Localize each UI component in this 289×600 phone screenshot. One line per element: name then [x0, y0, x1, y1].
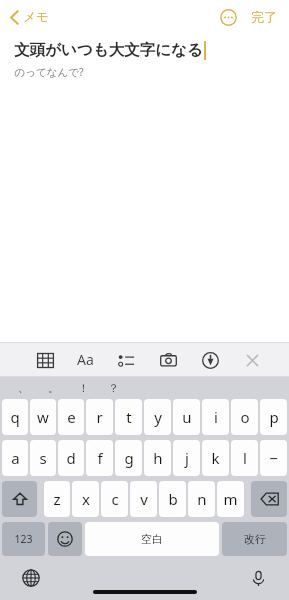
button[interactable]: y	[144, 399, 171, 435]
button[interactable]: ！	[68, 381, 98, 395]
button[interactable]: o	[231, 399, 258, 435]
button[interactable]: m	[217, 481, 244, 517]
staticText: s	[39, 448, 47, 468]
button[interactable]: s	[30, 440, 56, 476]
button[interactable]: 。	[38, 381, 68, 395]
staticText: y	[154, 407, 162, 427]
button[interactable]: Checklist	[111, 345, 141, 375]
button[interactable]: v	[130, 481, 157, 517]
button[interactable]: 完了	[247, 5, 281, 29]
staticText: b	[168, 489, 178, 509]
staticText: Aa	[77, 350, 94, 369]
staticText: g	[124, 448, 134, 468]
staticText: メモ	[23, 9, 49, 25]
staticText: d	[66, 448, 76, 468]
staticText: 123	[14, 532, 33, 546]
button[interactable]: b	[159, 481, 186, 517]
button[interactable]: Camera	[153, 345, 183, 375]
button[interactable]: p	[260, 399, 287, 435]
button[interactable]: メモ	[6, 5, 53, 29]
staticText: c	[111, 489, 119, 509]
button[interactable]: Close keyboard	[237, 345, 267, 375]
button[interactable]: Insert table	[30, 345, 60, 375]
button[interactable]: Backspace	[251, 481, 287, 517]
staticText: i	[214, 407, 218, 427]
button[interactable]: 、	[8, 381, 38, 395]
button[interactable]: Markup	[195, 345, 225, 375]
staticText: ！	[78, 381, 89, 395]
button[interactable]: q	[2, 399, 28, 435]
staticText: 改行	[244, 532, 266, 546]
button[interactable]: Shift	[2, 481, 37, 517]
staticText: l	[243, 448, 247, 468]
staticText: x	[82, 489, 90, 509]
staticText: j	[185, 448, 189, 468]
button[interactable]: w	[30, 399, 56, 435]
button[interactable]: t	[115, 399, 142, 435]
button[interactable]: f	[86, 440, 113, 476]
button[interactable]: x	[72, 481, 99, 517]
staticText: r	[96, 407, 103, 427]
staticText: q	[10, 407, 20, 427]
staticText: w	[37, 407, 49, 427]
button[interactable]: Aa	[71, 344, 100, 375]
staticText: 。	[48, 381, 59, 395]
button[interactable]: u	[173, 399, 200, 435]
staticText: p	[269, 407, 279, 427]
button[interactable]: r	[86, 399, 113, 435]
staticText: 、	[18, 381, 29, 395]
button[interactable]: n	[188, 481, 215, 517]
button[interactable]: i	[202, 399, 229, 435]
button[interactable]: z	[44, 481, 70, 517]
button[interactable]: a	[2, 440, 28, 476]
staticText: o	[240, 407, 250, 427]
staticText: ？	[108, 381, 119, 395]
button[interactable]: Dictation	[245, 565, 271, 591]
button[interactable]: l	[231, 440, 258, 476]
staticText: −	[269, 448, 278, 468]
button[interactable]: 改行	[222, 522, 287, 556]
staticText: t	[126, 407, 132, 427]
staticText: u	[182, 407, 192, 427]
button[interactable]: ？	[98, 381, 128, 395]
staticText: a	[11, 448, 20, 468]
button[interactable]: c	[101, 481, 128, 517]
button[interactable]: Emoji	[48, 522, 82, 556]
button[interactable]: j	[173, 440, 200, 476]
staticText: v	[140, 489, 148, 509]
button[interactable]: −	[260, 440, 287, 476]
staticText: h	[153, 448, 163, 468]
staticText: 完了	[251, 9, 277, 25]
staticText: 文頭がいつも大文字になる	[14, 40, 203, 60]
staticText: f	[97, 448, 103, 468]
staticText: 空白	[141, 532, 163, 546]
staticText: m	[223, 489, 238, 509]
button[interactable]: More options	[215, 4, 241, 30]
button[interactable]: g	[115, 440, 142, 476]
staticText: e	[67, 407, 76, 427]
staticText: のってなんで?	[14, 65, 84, 79]
button[interactable]: k	[202, 440, 229, 476]
staticText: z	[53, 489, 61, 509]
button[interactable]: e	[58, 399, 84, 435]
button[interactable]: d	[58, 440, 84, 476]
button[interactable]: 123	[2, 522, 45, 556]
staticText: k	[211, 448, 220, 468]
staticText: n	[197, 489, 207, 509]
button[interactable]: 空白	[85, 522, 219, 556]
button[interactable]: Switch keyboard	[18, 565, 44, 591]
button[interactable]: h	[144, 440, 171, 476]
